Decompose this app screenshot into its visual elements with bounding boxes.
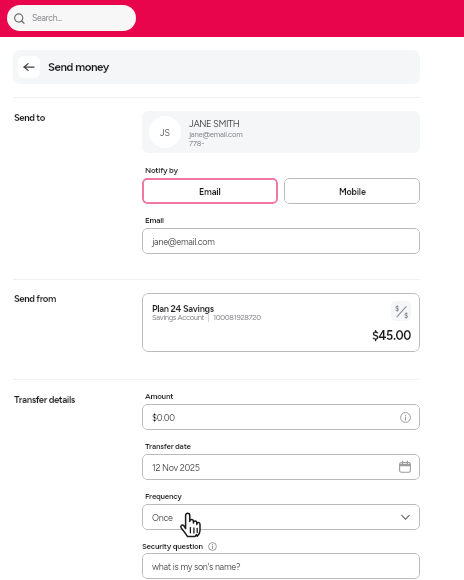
button[interactable]: Transfer date bbox=[142, 454, 420, 480]
button[interactable]: Email bbox=[142, 178, 278, 204]
staticText: JS bbox=[160, 127, 170, 138]
button[interactable]: Back bbox=[18, 56, 40, 78]
button[interactable]: Security question bbox=[142, 553, 420, 579]
staticText: 12 Nov 2025 bbox=[152, 462, 200, 473]
button[interactable]: Search bbox=[7, 5, 136, 31]
button[interactable]: Frequency bbox=[142, 504, 420, 530]
staticText: Frequency bbox=[145, 491, 182, 501]
staticText: Notify by bbox=[145, 165, 178, 175]
staticText: Email bbox=[199, 186, 221, 197]
staticText: Amount bbox=[145, 391, 174, 401]
staticText: Mobile bbox=[339, 186, 366, 197]
staticText: $ bbox=[395, 304, 400, 313]
button[interactable]: Mobile bbox=[284, 178, 420, 204]
staticText: $ bbox=[404, 311, 409, 320]
staticText: Search... bbox=[32, 13, 62, 23]
staticText: $45.00 bbox=[372, 328, 412, 343]
staticText: $0.00 bbox=[152, 412, 175, 423]
staticText: 778- bbox=[189, 139, 205, 148]
staticText: Transfer details bbox=[14, 394, 75, 406]
staticText: 100081928720 bbox=[213, 313, 261, 322]
staticText: JANE SMITH bbox=[189, 118, 240, 129]
staticText: what is my son's name? bbox=[152, 561, 241, 572]
button[interactable]: JS bbox=[142, 111, 420, 153]
button[interactable]: Email address bbox=[142, 228, 420, 254]
staticText: Plan 24 Savings bbox=[152, 303, 214, 314]
button[interactable]: Amount bbox=[142, 404, 420, 430]
staticText: Transfer date bbox=[145, 441, 191, 451]
staticText: Once bbox=[152, 512, 173, 523]
button[interactable]: Currency exchange bbox=[391, 301, 411, 321]
staticText: Savings Account bbox=[152, 313, 205, 322]
staticText: Send from bbox=[14, 293, 56, 305]
button[interactable]: Plan 24 Savings bbox=[142, 293, 420, 352]
staticText: Security question bbox=[142, 541, 203, 551]
staticText: jane@email.com bbox=[189, 130, 243, 139]
staticText: Email bbox=[145, 215, 164, 225]
staticText: Send money bbox=[48, 60, 109, 74]
staticText: jane@email.com bbox=[152, 236, 215, 247]
staticText: Send to bbox=[14, 112, 45, 124]
